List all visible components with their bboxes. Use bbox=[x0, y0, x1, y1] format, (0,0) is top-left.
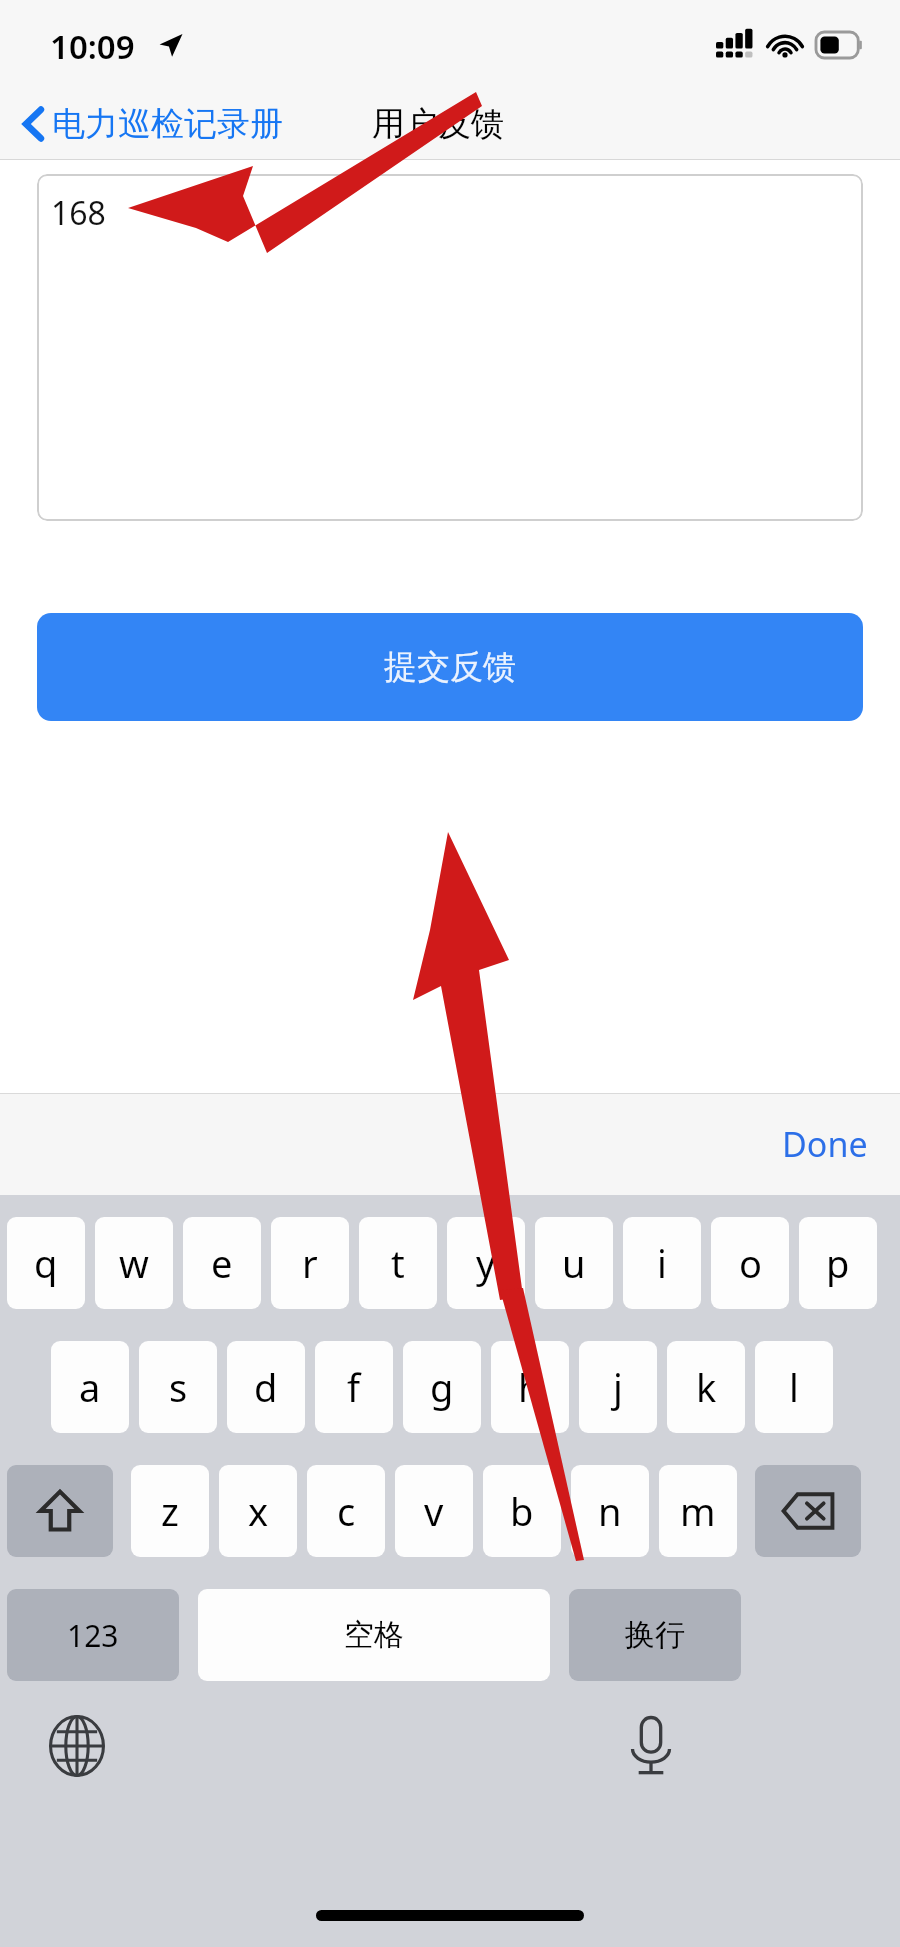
staticText: e bbox=[211, 1237, 233, 1289]
staticText: b bbox=[510, 1485, 534, 1537]
staticText: 123 bbox=[67, 1615, 119, 1656]
button[interactable]: g bbox=[403, 1341, 481, 1433]
staticText: m bbox=[680, 1485, 716, 1537]
button[interactable]: a bbox=[51, 1341, 129, 1433]
staticText: p bbox=[826, 1237, 850, 1289]
button[interactable]: m bbox=[659, 1465, 737, 1557]
button[interactable]: l bbox=[755, 1341, 833, 1433]
button[interactable]: Backspace bbox=[755, 1465, 861, 1557]
staticText: r bbox=[302, 1237, 318, 1289]
other: Back bbox=[22, 106, 44, 142]
button[interactable]: x bbox=[219, 1465, 297, 1557]
staticText: 电力巡检记录册 bbox=[52, 103, 283, 145]
staticText: a bbox=[79, 1361, 101, 1413]
staticText: u bbox=[562, 1237, 586, 1289]
staticText: c bbox=[337, 1485, 356, 1537]
button[interactable]: y bbox=[447, 1217, 525, 1309]
staticText: y bbox=[476, 1237, 496, 1289]
staticText: v bbox=[424, 1485, 444, 1537]
button[interactable]: h bbox=[491, 1341, 569, 1433]
button[interactable]: Done bbox=[772, 1113, 878, 1175]
button[interactable]: q bbox=[7, 1217, 85, 1309]
staticText: o bbox=[739, 1237, 762, 1289]
staticText: 10:09 bbox=[50, 24, 135, 69]
staticText: 空格 bbox=[344, 1616, 404, 1654]
button[interactable]: 168 bbox=[37, 174, 863, 521]
staticText: 用户反馈 bbox=[372, 103, 504, 145]
button[interactable]: d bbox=[227, 1341, 305, 1433]
staticText: z bbox=[161, 1485, 179, 1537]
button[interactable]: e bbox=[183, 1217, 261, 1309]
staticText: k bbox=[696, 1361, 717, 1413]
button[interactable]: z bbox=[131, 1465, 209, 1557]
button[interactable]: c bbox=[307, 1465, 385, 1557]
staticText: h bbox=[518, 1361, 542, 1413]
button[interactable]: Dictation bbox=[620, 1715, 682, 1777]
button[interactable]: Shift bbox=[7, 1465, 113, 1557]
button[interactable]: f bbox=[315, 1341, 393, 1433]
staticText: j bbox=[613, 1361, 623, 1413]
staticText: s bbox=[169, 1361, 188, 1413]
button[interactable]: p bbox=[799, 1217, 877, 1309]
staticText: g bbox=[430, 1361, 454, 1413]
staticText: i bbox=[657, 1237, 667, 1289]
staticText: 提交反馈 bbox=[384, 646, 516, 688]
staticText: t bbox=[391, 1237, 405, 1289]
button[interactable]: v bbox=[395, 1465, 473, 1557]
staticText: 换行 bbox=[625, 1616, 685, 1654]
staticText: l bbox=[789, 1361, 799, 1413]
button[interactable]: n bbox=[571, 1465, 649, 1557]
button[interactable]: 空格 bbox=[198, 1589, 550, 1681]
button[interactable]: Back bbox=[22, 103, 283, 145]
button[interactable]: k bbox=[667, 1341, 745, 1433]
staticText: w bbox=[119, 1237, 149, 1289]
button[interactable]: o bbox=[711, 1217, 789, 1309]
button[interactable]: t bbox=[359, 1217, 437, 1309]
staticText: f bbox=[347, 1361, 361, 1413]
button[interactable]: Change keyboard bbox=[46, 1715, 108, 1777]
button[interactable]: b bbox=[483, 1465, 561, 1557]
staticText: d bbox=[254, 1361, 278, 1413]
staticText: x bbox=[248, 1485, 269, 1537]
button[interactable]: 换行 bbox=[569, 1589, 741, 1681]
button[interactable]: j bbox=[579, 1341, 657, 1433]
button[interactable]: r bbox=[271, 1217, 349, 1309]
button[interactable]: u bbox=[535, 1217, 613, 1309]
button[interactable]: 提交反馈 bbox=[37, 613, 863, 721]
staticText: 168 bbox=[51, 191, 106, 235]
button[interactable]: w bbox=[95, 1217, 173, 1309]
staticText: n bbox=[598, 1485, 622, 1537]
staticText: q bbox=[34, 1237, 58, 1289]
button[interactable]: i bbox=[623, 1217, 701, 1309]
button[interactable]: 123 bbox=[7, 1589, 179, 1681]
staticText: Done bbox=[782, 1121, 868, 1167]
button[interactable]: s bbox=[139, 1341, 217, 1433]
